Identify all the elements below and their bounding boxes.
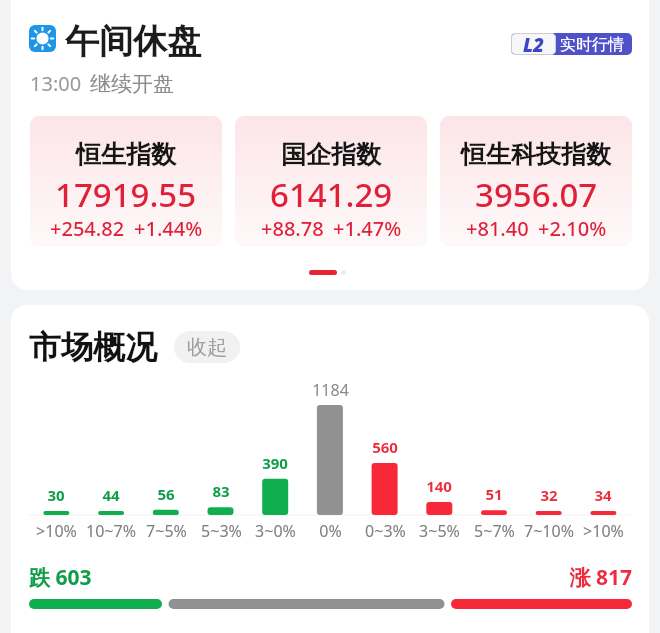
staticText: 30	[47, 485, 65, 505]
staticText: 0%	[319, 520, 342, 542]
staticText: +88.78	[261, 215, 324, 242]
staticText: 7~5%	[146, 520, 187, 542]
staticText: 午间休盘	[65, 20, 201, 63]
button[interactable]: 恒生科技指数	[440, 116, 632, 247]
staticText: 10~7%	[86, 520, 136, 542]
staticText: 1184	[312, 379, 349, 401]
staticText: 6141.29	[270, 172, 393, 217]
staticText: >10%	[583, 520, 624, 542]
staticText: 继续开盘	[90, 71, 174, 97]
staticText: 51	[485, 484, 503, 504]
button[interactable]: 国企指数	[235, 116, 427, 247]
staticText: L2	[523, 33, 545, 54]
staticText: 3~0%	[255, 520, 296, 542]
staticText: 恒生科技指数	[461, 139, 611, 170]
button[interactable]: 恒生指数	[30, 116, 222, 247]
staticText: 跌 603	[29, 563, 92, 592]
button[interactable]: Page 2	[341, 270, 346, 275]
staticText: 13:00	[30, 70, 82, 97]
staticText: 17919.55	[55, 172, 197, 217]
button[interactable]: Market session	[29, 25, 56, 52]
staticText: 3~5%	[419, 520, 460, 542]
staticText: 83	[212, 481, 230, 501]
staticText: 收起	[187, 335, 227, 360]
staticText: 56	[157, 484, 175, 504]
staticText: 国企指数	[281, 139, 381, 170]
staticText: 44	[102, 485, 120, 505]
staticText: >10%	[36, 520, 77, 542]
button[interactable]: Page 1	[309, 270, 337, 275]
staticText: 390	[262, 453, 288, 473]
staticText: +254.82	[50, 215, 125, 242]
staticText: 32	[540, 485, 558, 505]
staticText: +1.44%	[134, 215, 203, 242]
staticText: 0~3%	[365, 520, 406, 542]
staticText: 560	[372, 437, 398, 457]
staticText: 34	[594, 485, 612, 505]
staticText: 恒生指数	[76, 139, 176, 170]
staticText: 市场概况	[29, 327, 157, 367]
staticText: 5~3%	[201, 520, 242, 542]
staticText: 涨 817	[431, 563, 632, 592]
staticText: +81.40	[466, 215, 529, 242]
button[interactable]: L2	[511, 33, 632, 55]
staticText: 3956.07	[475, 172, 598, 217]
staticText: 实时行情	[560, 35, 624, 55]
button[interactable]: 收起	[174, 331, 240, 363]
staticText: 7~10%	[524, 520, 574, 542]
staticText: 140	[426, 476, 452, 496]
staticText: 5~7%	[474, 520, 515, 542]
staticText: +1.47%	[333, 215, 402, 242]
staticText: +2.10%	[538, 215, 607, 242]
